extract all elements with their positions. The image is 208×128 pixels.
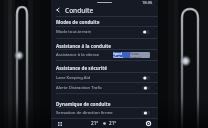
button[interactable]: 21°	[109, 120, 117, 126]
button[interactable]: Lane Keeping Aid	[51, 73, 158, 83]
button[interactable]: 21°	[91, 120, 99, 126]
button[interactable]: Sensation de direction ferme	[51, 108, 158, 118]
staticText: Modes de conduite	[56, 19, 100, 25]
staticText: Dynamique de conduite	[56, 101, 111, 107]
staticText: Assistance de sécurité	[56, 65, 107, 71]
button[interactable]: Cruise Control	[130, 52, 150, 58]
staticText: Conduite	[65, 6, 94, 15]
button[interactable]: Apps	[55, 119, 64, 128]
staticText: Cruise Control	[130, 52, 150, 58]
button[interactable]: Alerte Distraction Trafic	[51, 83, 158, 93]
staticText: Sensation de direction ferme	[56, 110, 142, 116]
button[interactable]: Climate	[101, 120, 107, 126]
button[interactable]: Mode tout-terrain	[51, 27, 158, 37]
staticText: Alerte Distraction Trafic	[56, 85, 142, 91]
staticText: Assistance à la conduite	[56, 43, 111, 49]
staticText: Mode tout-terrain	[56, 29, 142, 35]
staticText: 18:06	[142, 0, 153, 5]
button[interactable]: Back	[51, 5, 158, 15]
staticText: Assistance à la vitesse	[56, 52, 113, 58]
button[interactable]: Speed Limiter	[113, 52, 130, 58]
button[interactable]: Settings	[144, 119, 153, 128]
staticText: Speed Limiter	[113, 52, 130, 58]
button[interactable]: Back	[51, 5, 65, 15]
staticText: Lane Keeping Aid	[56, 75, 142, 81]
